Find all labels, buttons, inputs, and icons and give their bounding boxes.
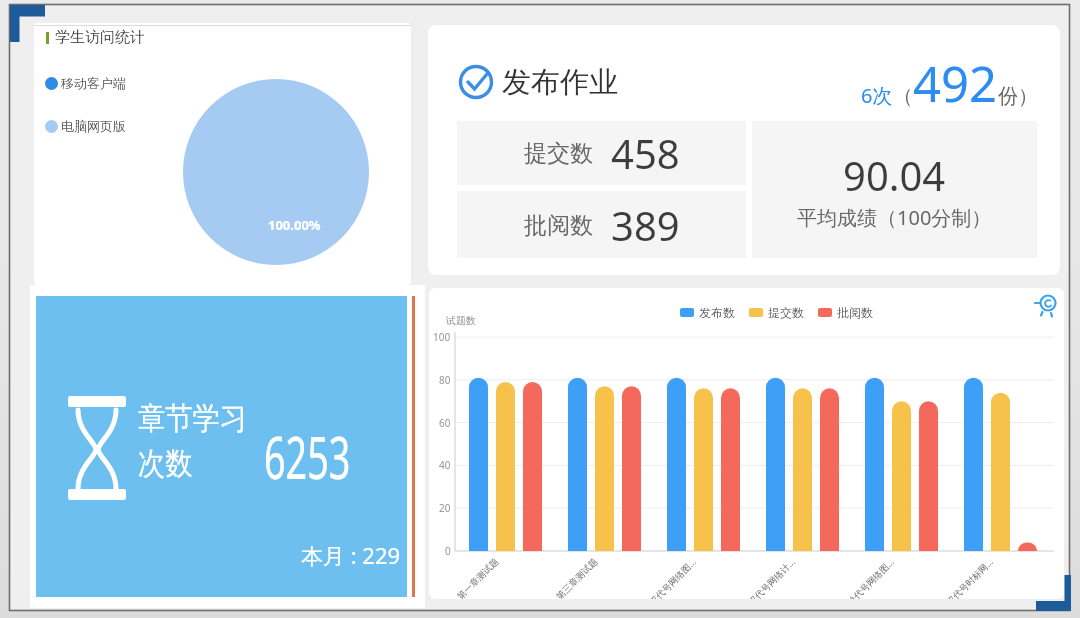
button[interactable]: 90.04	[752, 121, 1037, 258]
staticText: 100.00%	[268, 216, 321, 234]
staticText: 458	[611, 126, 680, 180]
staticText: 0	[445, 544, 451, 558]
staticText: 试题数	[446, 314, 476, 327]
staticText: 移动客户端	[61, 75, 126, 91]
staticText: 双代号网络计...	[745, 555, 797, 599]
button[interactable]: 批阅数	[457, 191, 746, 258]
staticText: 本月 : 229	[301, 540, 401, 570]
staticText: 6253	[264, 417, 350, 496]
staticText: 章节学习 次数	[138, 399, 247, 483]
staticText: 80	[439, 373, 451, 387]
staticText: 20	[439, 501, 451, 515]
button[interactable]: 学生访问统计	[34, 23, 411, 285]
staticText: 电脑网页版	[61, 118, 126, 134]
button[interactable]: 发布数	[429, 288, 1064, 599]
staticText: 第三章测试题	[553, 556, 599, 599]
staticText: （	[893, 84, 913, 109]
staticText: 发布数	[699, 305, 735, 320]
staticText: 提交数	[524, 139, 593, 168]
button[interactable]: 电脑网页版	[45, 118, 126, 134]
staticText: 单代号网络图...	[844, 555, 896, 599]
button[interactable]: 发布数	[680, 305, 735, 320]
button[interactable]: 章节学习 次数	[36, 296, 407, 597]
staticText: 双代号时标网...	[943, 555, 995, 599]
staticText: 第一章测试题	[454, 556, 500, 599]
staticText: 6次	[861, 82, 893, 109]
staticText: 平均成绩（100分制）	[797, 204, 992, 231]
staticText: 389	[611, 198, 680, 252]
staticText: 60	[439, 416, 451, 430]
staticText: 492	[913, 50, 998, 110]
button[interactable]: 批阅数	[818, 305, 873, 320]
button[interactable]: 移动客户端	[45, 75, 126, 91]
button[interactable]: 提交数	[749, 305, 804, 320]
staticText: 份）	[998, 84, 1038, 109]
staticText: 40	[439, 458, 451, 472]
staticText: 发布作业	[502, 64, 618, 101]
staticText: 批阅数	[837, 305, 873, 320]
button[interactable]: 提交数	[457, 121, 746, 185]
staticText: 学生访问统计	[55, 28, 145, 47]
button[interactable]: 发布作业	[428, 25, 1060, 275]
staticText: 提交数	[768, 305, 804, 320]
staticText: 批阅数	[524, 211, 593, 240]
staticText: 90.04	[843, 148, 946, 202]
staticText: 100	[433, 330, 451, 344]
staticText: 双代号网络图...	[646, 555, 698, 599]
